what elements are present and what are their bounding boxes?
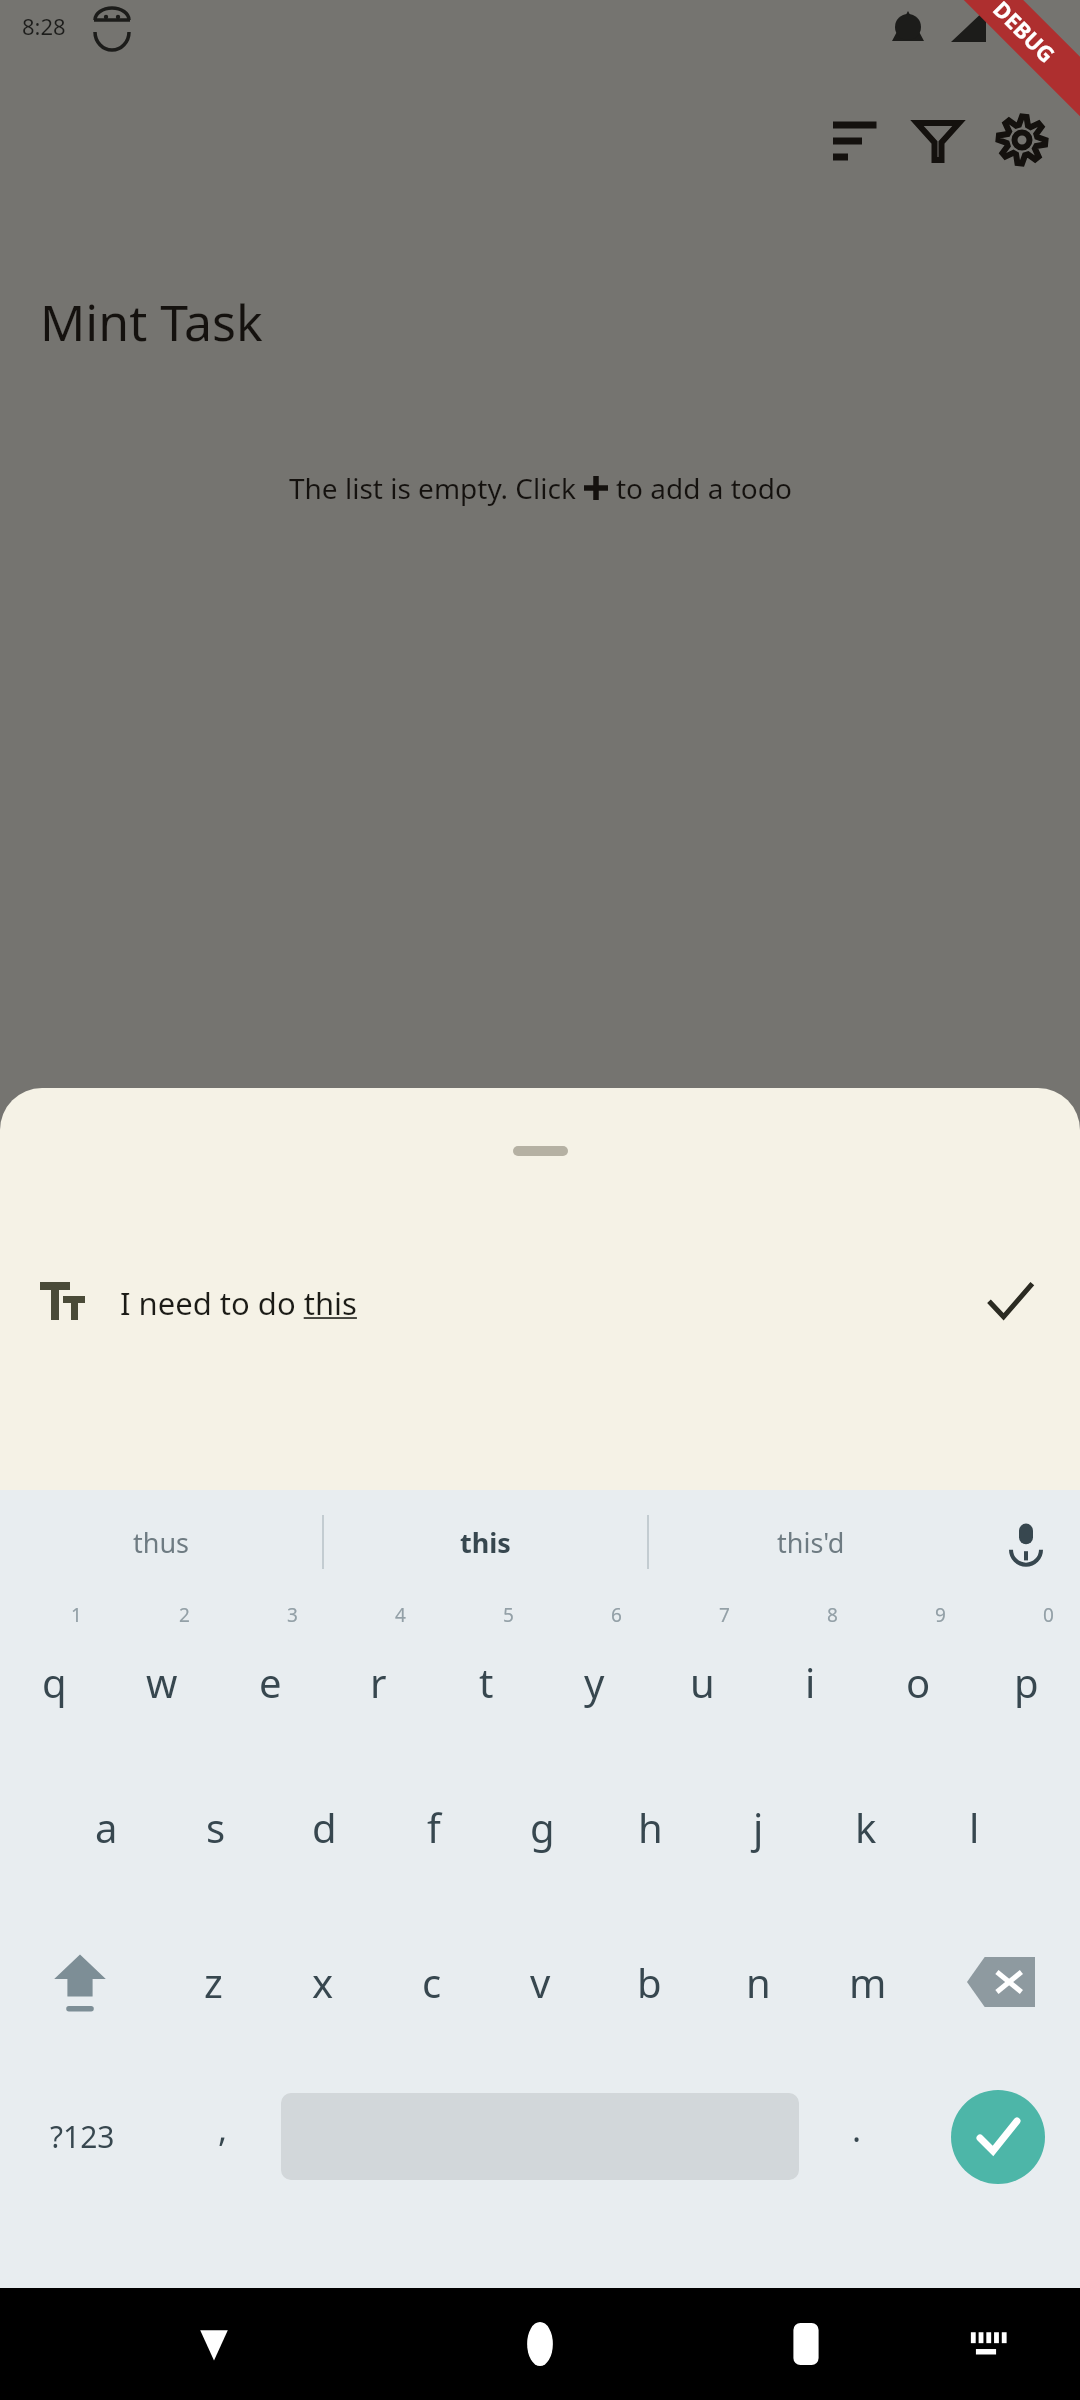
staticText: c	[422, 1955, 442, 2009]
staticText: 5	[503, 1602, 514, 1628]
staticText: Mint Task	[40, 288, 263, 356]
staticText: .	[852, 2106, 862, 2152]
staticText: this	[460, 1524, 511, 1561]
staticText: g	[530, 1800, 555, 1854]
staticText: a	[95, 1800, 118, 1854]
button[interactable]: this	[324, 1490, 647, 1594]
button[interactable]: Settings	[980, 98, 1064, 182]
button[interactable]: Home	[498, 2302, 582, 2386]
button[interactable]: Text formatting	[30, 1253, 1050, 1353]
staticText: h	[638, 1800, 663, 1854]
button[interactable]: b	[595, 1904, 704, 2059]
staticText: z	[204, 1955, 223, 2009]
button[interactable]: n	[704, 1904, 813, 2059]
button[interactable]: Shift	[0, 1904, 159, 2059]
staticText: t	[479, 1655, 494, 1709]
staticText: k	[855, 1800, 877, 1854]
button[interactable]: c	[377, 1904, 486, 2059]
button[interactable]: k	[812, 1749, 920, 1904]
button[interactable]: 9	[864, 1594, 972, 1749]
staticText: 8:28	[22, 11, 66, 41]
button[interactable]: Text formatting	[30, 1271, 94, 1335]
staticText: f	[427, 1800, 441, 1854]
button[interactable]: h	[596, 1749, 704, 1904]
staticText: y	[584, 1655, 605, 1709]
staticText: e	[259, 1655, 282, 1709]
staticText: 9	[935, 1602, 946, 1628]
staticText: ?123	[50, 2116, 115, 2157]
staticText: w	[146, 1655, 178, 1709]
staticText: i	[805, 1655, 816, 1709]
button[interactable]: Recents	[764, 2302, 848, 2386]
button[interactable]: Enter	[915, 2059, 1080, 2214]
button[interactable]: 2	[108, 1594, 216, 1749]
button[interactable]: f	[379, 1749, 488, 1904]
staticText: d	[312, 1800, 337, 1854]
staticText: 3	[287, 1602, 298, 1628]
staticText: x	[312, 1955, 334, 2009]
staticText: s	[206, 1800, 226, 1854]
button[interactable]: Voice input	[972, 1490, 1080, 1594]
button[interactable]: l	[920, 1749, 1028, 1904]
button[interactable]: j	[704, 1749, 812, 1904]
staticText: 4	[395, 1602, 406, 1628]
button[interactable]: 8	[756, 1594, 864, 1749]
button[interactable]: g	[488, 1749, 596, 1904]
staticText: 6	[611, 1602, 622, 1628]
staticText: this'd	[777, 1524, 845, 1561]
button[interactable]: 1	[0, 1594, 108, 1749]
staticText: DEBUG	[987, 0, 1062, 69]
button[interactable]: 6	[540, 1594, 648, 1749]
staticText: q	[42, 1655, 67, 1709]
staticText: 7	[719, 1602, 730, 1628]
button[interactable]: 7	[648, 1594, 756, 1749]
staticText: 1	[71, 1602, 82, 1628]
button[interactable]: m	[813, 1904, 922, 2059]
button[interactable]: Save todo	[970, 1263, 1050, 1343]
button[interactable]: Back	[172, 2302, 256, 2386]
staticText: n	[746, 1955, 771, 2009]
button[interactable]: Filter	[896, 98, 980, 182]
staticText: m	[849, 1955, 887, 2009]
staticText: p	[1014, 1655, 1039, 1709]
button[interactable]: this'd	[649, 1490, 972, 1594]
button[interactable]: ,	[165, 2059, 281, 2214]
staticText: l	[969, 1800, 980, 1854]
button[interactable]: .	[799, 2059, 915, 2214]
button[interactable]: ?123	[0, 2059, 165, 2214]
staticText: o	[906, 1655, 931, 1709]
button[interactable]: thus	[0, 1490, 322, 1594]
staticText: j	[753, 1800, 764, 1854]
button[interactable]: Backspace	[922, 1904, 1080, 2059]
button[interactable]: x	[268, 1904, 377, 2059]
staticText: 2	[179, 1602, 190, 1628]
button[interactable]: z	[159, 1904, 268, 2059]
staticText: 8	[827, 1602, 838, 1628]
button[interactable]: 4	[324, 1594, 432, 1749]
button[interactable]: 3	[216, 1594, 324, 1749]
staticText: 0	[1043, 1602, 1054, 1628]
staticText: The list is empty. Click	[289, 469, 576, 507]
staticText: to add a todo	[616, 469, 792, 507]
button[interactable]: s	[161, 1749, 270, 1904]
button[interactable]: 0	[972, 1594, 1080, 1749]
staticText: thus	[133, 1524, 190, 1561]
staticText: r	[370, 1655, 387, 1709]
button[interactable]: a	[52, 1749, 161, 1904]
button[interactable]: 5	[432, 1594, 540, 1749]
staticText: v	[530, 1955, 551, 2009]
staticText: ,	[218, 2106, 228, 2152]
button[interactable]: d	[270, 1749, 379, 1904]
staticText: I need to do this	[120, 1282, 357, 1324]
button[interactable]: v	[486, 1904, 595, 2059]
staticText: b	[637, 1955, 662, 2009]
button[interactable]: Sort	[812, 98, 896, 182]
button[interactable]: Hide keyboard	[950, 2308, 1022, 2380]
staticText: u	[690, 1655, 715, 1709]
